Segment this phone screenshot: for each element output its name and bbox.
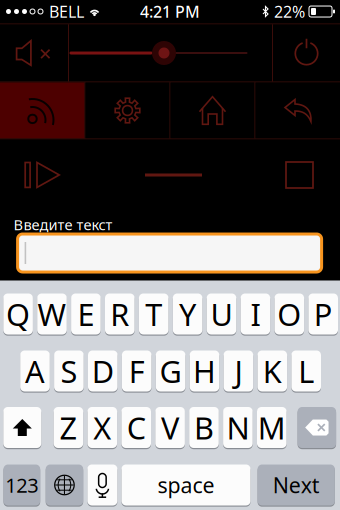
button[interactable]: W	[37, 293, 67, 335]
staticText: A	[25, 351, 45, 391]
button[interactable]: Z	[54, 406, 83, 449]
button[interactable]: Signal	[0, 82, 84, 138]
button[interactable]: Power	[273, 24, 340, 81]
staticText: B	[194, 407, 214, 448]
button[interactable]: G	[156, 350, 185, 392]
button[interactable]: Minus	[113, 139, 226, 210]
staticText: N	[226, 407, 249, 448]
staticText: W	[37, 294, 66, 334]
staticText: C	[127, 407, 146, 448]
button[interactable]: Play or pause	[0, 139, 113, 210]
staticText: 22%	[274, 1, 305, 22]
staticText: O	[277, 294, 301, 334]
staticText: BELL	[49, 1, 84, 22]
button[interactable]: S	[54, 350, 84, 392]
button[interactable]: Home	[170, 82, 254, 138]
button[interactable]: Volume	[69, 24, 272, 81]
button[interactable]: Backspace	[298, 406, 336, 449]
button[interactable]: Stop	[226, 139, 340, 210]
staticText: X	[93, 407, 111, 448]
button[interactable]: F	[122, 350, 151, 392]
button[interactable]: R	[105, 293, 135, 335]
button[interactable]: J	[224, 350, 253, 392]
button[interactable]: X	[87, 406, 117, 449]
button[interactable]: Next	[258, 464, 335, 506]
button[interactable]: N	[223, 406, 253, 449]
button[interactable]: B	[189, 406, 219, 449]
button[interactable]: U	[207, 293, 236, 335]
staticText: Y	[179, 294, 196, 334]
staticText: L	[298, 351, 314, 391]
staticText: K	[263, 351, 282, 391]
staticText: H	[193, 351, 216, 391]
staticText: F	[129, 351, 145, 391]
staticText: Q	[6, 294, 30, 334]
button[interactable]: D	[88, 350, 118, 392]
button[interactable]: L	[291, 350, 321, 392]
staticText: E	[77, 294, 94, 334]
button[interactable]: Settings	[85, 82, 169, 138]
staticText: D	[92, 351, 114, 391]
staticText: Z	[59, 407, 77, 448]
button[interactable]: E	[71, 293, 101, 335]
button[interactable]: Y	[173, 293, 202, 335]
staticText: T	[145, 294, 162, 334]
button[interactable]: Next keyboard	[46, 464, 83, 506]
button[interactable]: Text field	[18, 234, 322, 272]
button[interactable]: H	[190, 350, 219, 392]
staticText: M	[258, 407, 286, 448]
button[interactable]: Dictation	[87, 464, 117, 506]
staticText: space	[157, 471, 214, 499]
staticText: U	[210, 294, 232, 334]
button[interactable]: P	[308, 293, 338, 335]
staticText: J	[234, 351, 242, 391]
button[interactable]: Shift	[3, 406, 41, 449]
button[interactable]: V	[155, 406, 185, 449]
button[interactable]: C	[121, 406, 151, 449]
staticText: I	[250, 294, 260, 334]
button[interactable]: space	[121, 464, 250, 506]
staticText: R	[110, 294, 129, 334]
staticText: P	[314, 294, 333, 334]
button[interactable]: K	[257, 350, 287, 392]
button[interactable]: I	[241, 293, 270, 335]
button[interactable]: T	[139, 293, 168, 335]
button[interactable]: Q	[3, 293, 33, 335]
staticText: Введите текст	[13, 215, 112, 234]
button[interactable]: O	[274, 293, 304, 335]
staticText: S	[60, 351, 77, 391]
staticText: G	[160, 351, 182, 391]
staticText: 123	[5, 472, 38, 498]
staticText: 4:21 PM	[140, 1, 200, 22]
staticText: V	[161, 407, 179, 448]
button[interactable]: 123	[3, 464, 40, 506]
button[interactable]: A	[20, 350, 50, 392]
button[interactable]: M	[257, 406, 287, 449]
button[interactable]: Back	[255, 82, 340, 138]
button[interactable]: Mute	[0, 24, 68, 81]
staticText: Next	[273, 471, 320, 499]
